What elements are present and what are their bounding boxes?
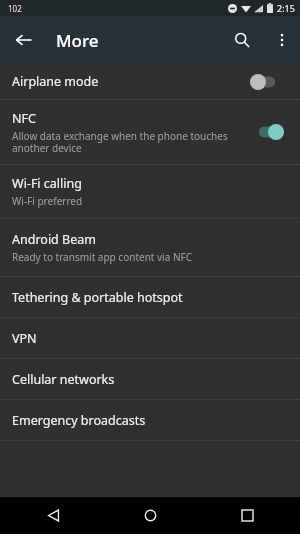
staticText: VPN — [12, 330, 37, 347]
button[interactable]: Android Beam — [0, 219, 300, 276]
staticText: Ready to transmit app content via NFC — [12, 250, 192, 264]
staticText: Wi-Fi preferred — [12, 194, 83, 208]
staticText: Android Beam — [12, 231, 96, 248]
button[interactable]: Emergency broadcasts — [0, 400, 300, 440]
staticText: NFC — [12, 110, 36, 127]
button[interactable]: Wi-Fi calling — [0, 165, 300, 218]
staticText: Airplane mode — [12, 73, 99, 90]
button[interactable]: More options — [264, 22, 300, 58]
staticText: More — [56, 29, 99, 52]
staticText: Cellular networks — [12, 371, 115, 388]
button[interactable]: Cellular networks — [0, 359, 300, 399]
staticText: Wi-Fi calling — [12, 175, 82, 192]
staticText: 2:15 — [277, 2, 295, 14]
staticText: Tethering & portable hotspot — [12, 289, 183, 306]
button[interactable]: Recent apps — [224, 497, 270, 534]
button[interactable]: Back — [0, 16, 48, 64]
button[interactable]: Search — [220, 18, 264, 62]
staticText: Allow data exchange when the phone touch… — [12, 129, 228, 155]
button[interactable]: NFC on — [246, 118, 288, 146]
button[interactable]: Back — [30, 497, 76, 534]
button[interactable]: VPN — [0, 318, 300, 358]
button[interactable]: Tethering & portable hotspot — [0, 277, 300, 317]
button[interactable]: Home — [127, 497, 173, 534]
button[interactable]: Airplane mode off — [246, 68, 288, 96]
staticText: 102 — [8, 3, 22, 14]
button[interactable]: NFC — [0, 100, 300, 164]
staticText: Emergency broadcasts — [12, 412, 146, 429]
button[interactable]: Airplane mode — [0, 64, 300, 99]
